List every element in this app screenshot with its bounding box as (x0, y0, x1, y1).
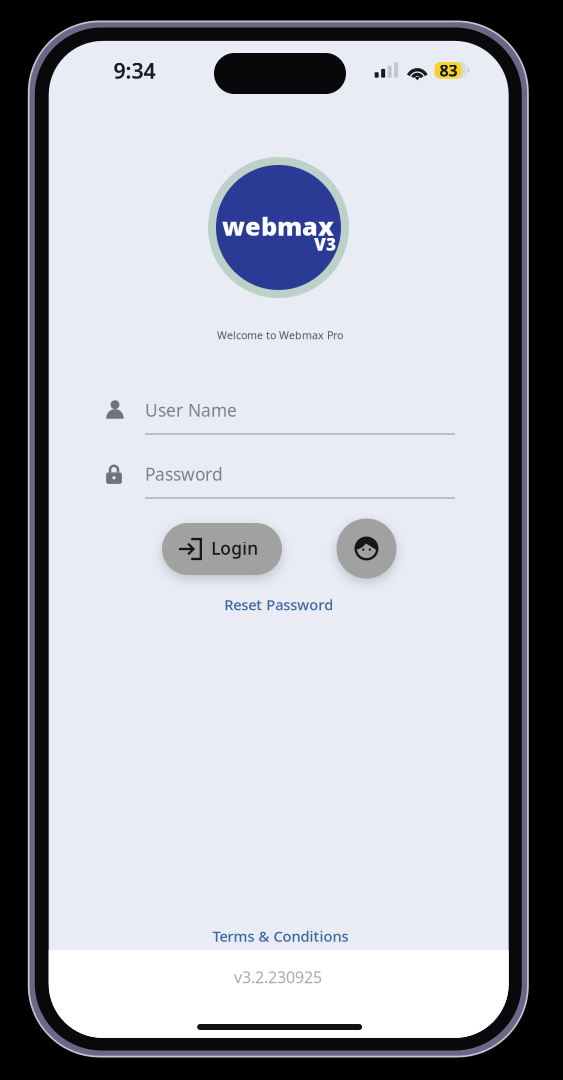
button[interactable]: Terms & Conditions (202, 920, 358, 952)
staticText: Reset Password (224, 595, 333, 614)
staticText: webmax (222, 209, 334, 243)
button[interactable]: Login (162, 523, 282, 575)
button[interactable]: Sign in with Face ID (336, 518, 396, 578)
staticText: 9:34 (113, 56, 155, 85)
staticText: v3.2.230925 (234, 966, 322, 988)
staticText: V3 (314, 232, 336, 255)
staticText: Password (145, 462, 223, 485)
staticText: 83 (440, 60, 458, 81)
staticText: Welcome to Webmax Pro (217, 328, 343, 342)
staticText: User Name (145, 398, 237, 421)
staticText: Terms & Conditions (212, 926, 348, 946)
button[interactable]: Reset Password (214, 590, 343, 619)
staticText: Login (211, 536, 258, 559)
